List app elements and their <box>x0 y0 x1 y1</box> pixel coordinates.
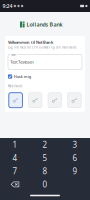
staticText: Test Testesen <box>10 59 33 64</box>
staticText: 1 <box>12 139 17 150</box>
staticText: 0 <box>42 179 47 190</box>
staticText: Mobilkode <box>8 85 23 88</box>
button[interactable]: Husk mig <box>8 74 82 79</box>
button[interactable]: Code digit <box>68 93 81 108</box>
button[interactable]: 2 <box>30 138 60 151</box>
staticText: Navn <box>11 53 17 56</box>
button[interactable]: Code digit <box>9 93 22 108</box>
button[interactable]: 8 <box>30 164 60 178</box>
button[interactable]: Delete <box>0 178 30 191</box>
staticText: 6 <box>72 153 77 163</box>
staticText: 8 <box>42 166 47 176</box>
staticText: 3 <box>72 139 77 150</box>
staticText: 5 <box>42 153 47 163</box>
button[interactable]: 6 <box>60 151 90 164</box>
button[interactable]: 5 <box>30 151 60 164</box>
button[interactable]: 9 <box>60 164 90 178</box>
button[interactable]: 7 <box>0 164 30 178</box>
staticText: Lollands Bank <box>26 21 62 28</box>
staticText: 9:24 <box>2 2 12 10</box>
button[interactable]: Code digit <box>28 93 42 108</box>
button[interactable]: Code digit <box>48 93 62 108</box>
staticText: Log ind med dit CPR-nummer og din mobilk… <box>8 46 77 49</box>
staticText: 2 <box>42 139 47 150</box>
staticText: 4 <box>12 153 17 163</box>
staticText: 9 <box>72 166 77 176</box>
staticText: 7 <box>12 166 17 176</box>
button[interactable]: 3 <box>60 138 90 151</box>
button[interactable]: 0 <box>30 178 60 191</box>
button[interactable]: 4 <box>0 151 30 164</box>
staticText: Husk mig <box>14 74 31 79</box>
staticText: Velkommen til NetBank <box>8 39 53 45</box>
button[interactable]: 1 <box>0 138 30 151</box>
